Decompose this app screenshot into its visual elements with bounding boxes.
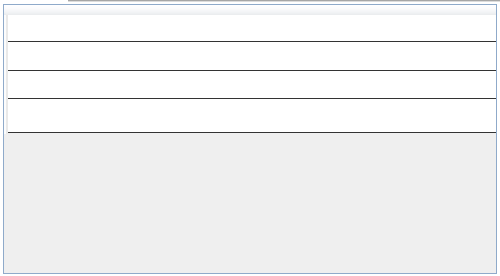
button[interactable]: Row 4 (8, 99, 496, 133)
button[interactable]: Row 1 (8, 15, 496, 42)
button[interactable]: Row 2 (8, 42, 496, 71)
button[interactable]: Row 3 (8, 71, 496, 99)
